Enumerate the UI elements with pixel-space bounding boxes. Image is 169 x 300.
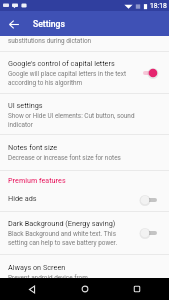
staticText: Settings — [33, 19, 65, 29]
button[interactable]: substitutions during dictation — [0, 36, 169, 51]
button[interactable]: Switch off — [142, 226, 158, 240]
staticText: substitutions during dictation — [8, 37, 92, 45]
button[interactable]: Switch on — [142, 66, 158, 80]
button[interactable]: Always on Screen — [0, 255, 169, 300]
staticText: Decrease or increase font size for notes — [8, 154, 121, 162]
button[interactable]: Google's control of capital letters — [0, 52, 169, 93]
button[interactable]: Recent apps — [117, 278, 157, 300]
staticText: Hide ads — [8, 194, 37, 203]
staticText: Prevent android device from sleeping — [8, 274, 88, 291]
staticText: Notes font size — [8, 143, 58, 152]
staticText: Google's control of capital letters — [8, 59, 115, 68]
staticText: Always on Screen — [8, 263, 66, 272]
button[interactable]: Home — [65, 278, 105, 300]
staticText: Premium features — [8, 176, 66, 184]
button[interactable]: Back — [12, 278, 52, 300]
staticText: Show or Hide UI elements: Cut button, so… — [8, 112, 135, 129]
staticText: Dark Background (Energy saving) — [8, 219, 116, 228]
button[interactable]: Switch off — [142, 193, 158, 207]
button[interactable]: UI settings — [0, 94, 169, 134]
button[interactable]: Hide ads — [0, 188, 169, 211]
staticText: Google will place capital letters in the… — [8, 70, 126, 87]
button[interactable]: Dark Background (Energy saving) — [0, 212, 169, 254]
button[interactable]: Notes font size — [0, 135, 169, 170]
staticText: Black Background and white text. This se… — [8, 230, 118, 247]
button[interactable]: Navigate up — [0, 11, 27, 36]
staticText: UI settings — [8, 101, 43, 110]
staticText: 18:18 — [150, 2, 167, 10]
